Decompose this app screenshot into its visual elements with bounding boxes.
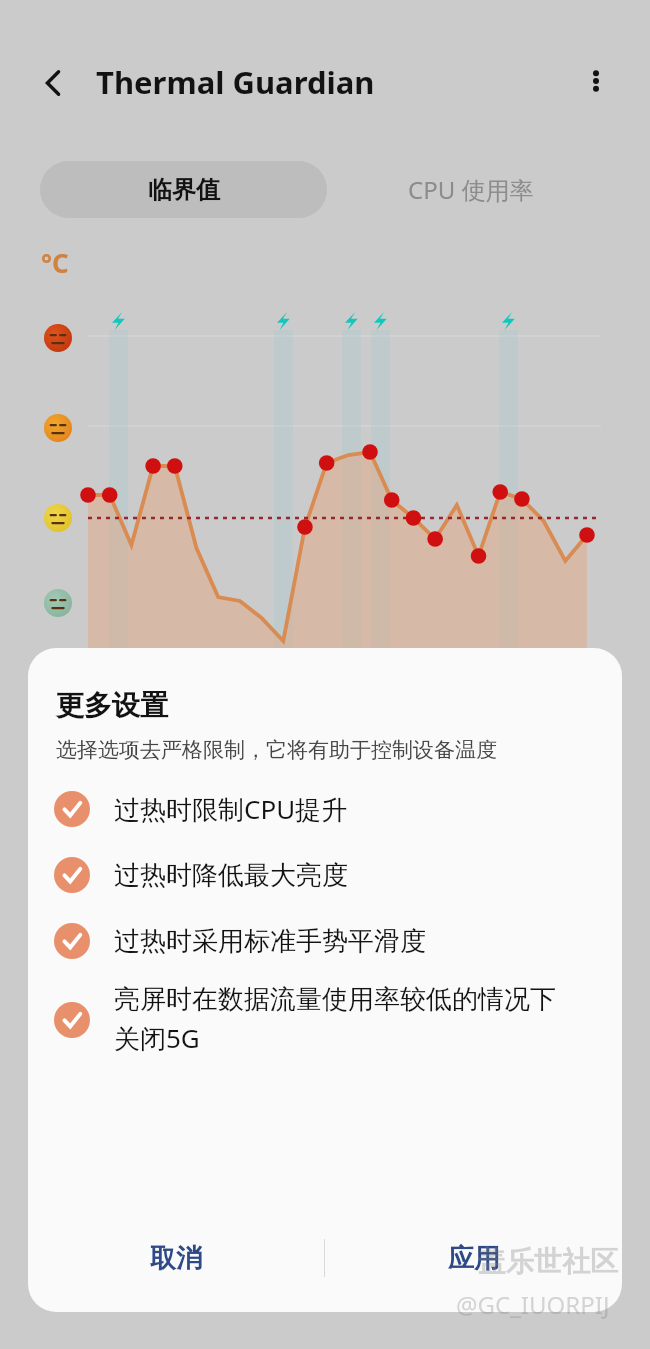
staticText: 选择选项去严格限制，它将有助于控制设备温度 — [56, 737, 497, 763]
staticText: 取消 — [150, 1242, 202, 1275]
staticText: 过热时采用标准手势平滑度 — [114, 925, 426, 958]
staticText: 盖乐世社区 — [478, 1244, 618, 1279]
staticText: 过热时降低最大亮度 — [114, 859, 348, 892]
button[interactable]: 过热时降低最大亮度 — [28, 857, 622, 893]
staticText: Thermal Guardian — [96, 61, 375, 103]
staticText: 应用 — [448, 1242, 500, 1275]
staticText: °C — [41, 245, 69, 280]
staticText: 更多设置 — [56, 688, 168, 723]
button[interactable]: Back — [26, 56, 80, 110]
button[interactable]: 应用 — [325, 1204, 622, 1312]
staticText: 过热时限制CPU提升 — [114, 791, 348, 827]
button[interactable]: More options — [570, 55, 622, 107]
button[interactable]: 过热时限制CPU提升 — [28, 791, 622, 827]
button[interactable]: 亮屏时在数据流量使用率较低的情况下 关闭5G — [28, 983, 622, 1056]
button[interactable]: 取消 — [28, 1204, 324, 1312]
button[interactable]: CPU 使用率 — [340, 161, 602, 218]
button[interactable]: 过热时采用标准手势平滑度 — [28, 923, 622, 959]
staticText: @GC_IUORPIJ — [456, 1288, 610, 1321]
staticText: 亮屏时在数据流量使用率较低的情况下 关闭5G — [114, 983, 556, 1056]
staticText: 临界值 — [148, 175, 220, 205]
staticText: CPU 使用率 — [408, 173, 534, 206]
button[interactable]: 临界值 — [40, 161, 327, 218]
